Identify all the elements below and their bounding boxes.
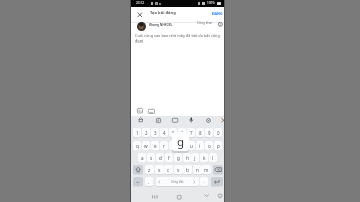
- button[interactable]: [221, 118, 225, 123]
- staticText: Công khai: [197, 21, 212, 25]
- button[interactable]: [172, 118, 178, 123]
- staticText: 4: [163, 130, 166, 136]
- button[interactable]: [156, 118, 161, 123]
- staticText: m: [204, 167, 209, 173]
- button[interactable]: 9: [205, 128, 213, 137]
- staticText: z: [148, 167, 151, 173]
- staticText: 2: [145, 130, 148, 136]
- staticText: a: [141, 155, 144, 161]
- button[interactable]: [152, 195, 158, 199]
- staticText: x: [158, 167, 161, 173]
- staticText: ĐĂNG: [212, 11, 223, 16]
- button[interactable]: c: [164, 165, 173, 174]
- button[interactable]: o: [205, 141, 213, 150]
- button[interactable]: 2: [142, 128, 150, 137]
- staticText: b: [186, 167, 189, 173]
- button[interactable]: a: [138, 153, 146, 162]
- staticText: i: [199, 143, 201, 149]
- staticText: ,: [148, 179, 150, 185]
- staticText: 100%: [207, 1, 215, 5]
- staticText: đoạt: [135, 38, 144, 43]
- staticText: .: [203, 179, 205, 185]
- button[interactable]: 3: [151, 128, 159, 137]
- button[interactable]: 7: [187, 128, 195, 137]
- staticText: Tạo bài đăng: [150, 10, 176, 16]
- button[interactable]: g: [174, 153, 182, 162]
- button[interactable]: i: [196, 141, 204, 150]
- button[interactable]: w: [142, 141, 150, 150]
- staticText: 23:12: [136, 1, 145, 5]
- button[interactable]: m: [202, 165, 211, 174]
- button[interactable]: j: [191, 153, 199, 162]
- button[interactable]: ,: [145, 177, 153, 186]
- button[interactable]: [189, 117, 193, 123]
- staticText: 1: [136, 130, 139, 136]
- staticText: 5: [172, 130, 175, 136]
- button[interactable]: d: [156, 153, 164, 162]
- staticText: 0: [217, 130, 220, 136]
- button[interactable]: e: [151, 141, 159, 150]
- button[interactable]: b: [183, 165, 192, 174]
- button[interactable]: q: [133, 141, 141, 150]
- button[interactable]: s: [147, 153, 155, 162]
- button[interactable]: [211, 177, 223, 186]
- button[interactable]: !#1: [133, 177, 143, 186]
- staticText: f: [168, 155, 170, 161]
- staticText: d: [159, 155, 162, 161]
- staticText: 6: [181, 130, 184, 136]
- button[interactable]: 1: [133, 128, 141, 137]
- button[interactable]: 5: [169, 128, 177, 137]
- staticText: g: [177, 134, 185, 150]
- staticText: 3: [154, 130, 157, 136]
- button[interactable]: y: [178, 141, 186, 150]
- button[interactable]: [138, 117, 143, 122]
- button[interactable]: Tiếng Việt: [156, 177, 199, 186]
- staticText: k: [203, 155, 206, 161]
- button[interactable]: ĐĂNG: [212, 11, 223, 16]
- staticText: 8: [199, 130, 202, 136]
- button[interactable]: r: [160, 141, 168, 150]
- staticText: h: [186, 155, 189, 161]
- button[interactable]: 4: [160, 128, 168, 137]
- button[interactable]: f: [165, 153, 173, 162]
- button[interactable]: Công khai: [197, 21, 212, 25]
- staticText: v: [177, 167, 180, 173]
- staticText: 9: [208, 130, 211, 136]
- staticText: o: [208, 143, 211, 149]
- button[interactable]: 8: [196, 128, 204, 137]
- button[interactable]: l: [209, 153, 217, 162]
- staticText: y: [181, 143, 184, 149]
- button[interactable]: [218, 194, 222, 198]
- button[interactable]: [148, 109, 155, 114]
- staticText: w: [144, 143, 148, 149]
- staticText: u: [190, 143, 193, 149]
- button[interactable]: [213, 165, 223, 174]
- button[interactable]: 6: [178, 128, 186, 137]
- button[interactable]: n: [193, 165, 202, 174]
- staticText: !#1: [136, 180, 140, 183]
- button[interactable]: u: [187, 141, 195, 150]
- button[interactable]: [133, 165, 143, 174]
- button[interactable]: z: [145, 165, 154, 174]
- button[interactable]: [177, 195, 182, 200]
- staticText: l: [212, 155, 214, 161]
- button[interactable]: 0: [214, 128, 222, 137]
- staticText: g: [177, 155, 180, 161]
- button[interactable]: [135, 10, 145, 20]
- button[interactable]: p: [214, 141, 222, 150]
- button[interactable]: [137, 108, 143, 114]
- staticText: Khang NHKCRL: [149, 23, 173, 27]
- button[interactable]: x: [155, 165, 164, 174]
- staticText: Tiếng Việt: [171, 180, 184, 184]
- staticText: n: [196, 167, 199, 173]
- button[interactable]: v: [174, 165, 183, 174]
- button[interactable]: [204, 194, 209, 197]
- button[interactable]: t: [169, 141, 177, 150]
- button[interactable]: [137, 22, 146, 31]
- button[interactable]: .: [200, 177, 208, 186]
- button[interactable]: k: [200, 153, 208, 162]
- staticText: e: [154, 143, 157, 149]
- button[interactable]: h: [183, 153, 191, 162]
- button[interactable]: [206, 118, 211, 123]
